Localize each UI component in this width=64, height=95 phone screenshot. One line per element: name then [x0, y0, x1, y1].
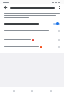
button[interactable]: Home	[27, 87, 37, 95]
button[interactable]	[0, 36, 64, 43]
button[interactable]: More options	[57, 6, 61, 10]
button[interactable]: Back	[3, 5, 8, 10]
button[interactable]	[0, 43, 64, 50]
button[interactable]: Recents	[46, 87, 56, 95]
button[interactable]: Back	[9, 87, 19, 95]
button[interactable]	[0, 20, 64, 27]
button[interactable]	[0, 27, 64, 34]
